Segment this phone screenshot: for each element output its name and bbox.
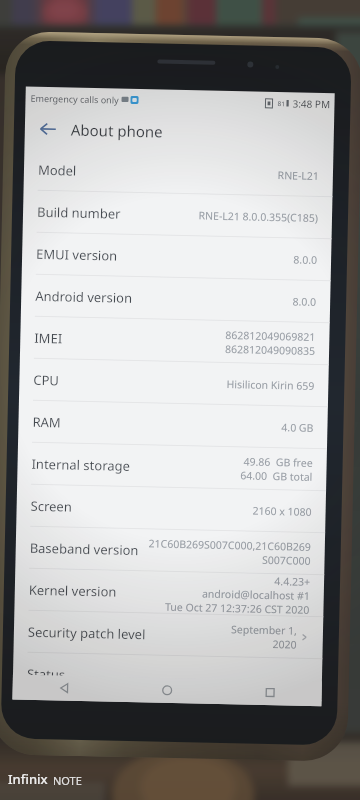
staticText: Status <box>27 665 66 683</box>
staticText: 21C60B269S007C000,21C60B269 <box>148 536 311 554</box>
button[interactable]: IMEI <box>20 316 330 365</box>
staticText: 2020 <box>271 637 297 652</box>
staticText: September 1, <box>231 622 297 638</box>
button[interactable]: Back <box>12 674 116 702</box>
staticText: Tue Oct 27 12:37:26 CST 2020 <box>164 600 310 616</box>
staticText: CPU <box>33 371 60 389</box>
staticText: Emergency calls only <box>30 92 120 106</box>
button[interactable]: Home <box>115 677 219 704</box>
button[interactable]: Model <box>23 148 333 197</box>
staticText: Internal storage <box>31 455 131 475</box>
button[interactable]: Baseband version <box>15 526 325 575</box>
button[interactable]: RAM <box>18 400 328 449</box>
staticText: Baseband version <box>29 539 139 559</box>
button[interactable]: CPU <box>19 358 329 407</box>
button[interactable]: Build number <box>23 190 332 239</box>
staticText: Security patch level <box>28 623 146 643</box>
staticText: 2160 x 1080 <box>251 504 312 519</box>
staticText: NOTE <box>53 773 82 788</box>
staticText: EMUI version <box>36 245 118 265</box>
staticText: S007C000 <box>261 553 311 568</box>
button[interactable]: Screen <box>16 484 326 533</box>
staticText: RAM <box>32 413 62 431</box>
staticText: 8.0.0 <box>293 252 317 267</box>
staticText: 3:48 PM <box>292 96 331 111</box>
staticText: About phone <box>71 120 163 142</box>
staticText: 64.00 GB total <box>239 468 312 484</box>
button[interactable]: EMUI version <box>22 232 331 281</box>
staticText: RNE-L21 8.0.0.355(C185) <box>198 208 318 225</box>
button[interactable]: Internal storage <box>17 442 327 491</box>
staticText: Hisilicon Kirin 659 <box>226 377 314 393</box>
button[interactable]: Back <box>24 109 71 150</box>
staticText: 81 <box>277 99 286 108</box>
staticText: 862812049090835 <box>224 342 315 358</box>
staticText: 862812049069821 <box>224 328 316 344</box>
staticText: 49.86 GB free <box>242 454 313 470</box>
staticText: Model <box>38 161 77 180</box>
staticText: Infinix <box>8 770 48 788</box>
staticText: Android version <box>35 287 132 307</box>
staticText: Kernel version <box>29 581 117 601</box>
button[interactable]: Kernel version <box>14 568 324 617</box>
staticText: IMEI <box>34 329 62 347</box>
staticText: 4.4.23+ <box>274 574 310 589</box>
staticText: Screen <box>30 497 73 516</box>
button[interactable]: Security patch level <box>13 610 323 659</box>
staticText: RNE-L21 <box>277 168 319 183</box>
staticText: android@localhost #1 <box>202 586 310 603</box>
button[interactable]: Recents <box>218 679 322 706</box>
staticText: 8.0.0 <box>292 294 316 309</box>
button[interactable]: Status <box>12 652 322 701</box>
button[interactable]: Android version <box>21 274 331 323</box>
staticText: Build number <box>37 203 121 223</box>
staticText: 4.0 GB <box>280 420 314 435</box>
